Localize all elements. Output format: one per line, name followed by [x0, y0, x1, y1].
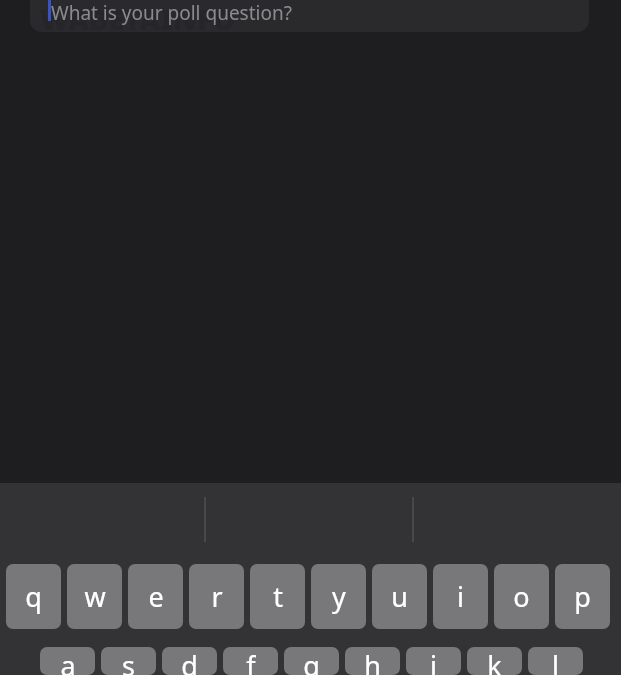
- staticText: q: [25, 578, 42, 615]
- button[interactable]: WABETAINFO: [30, 0, 589, 32]
- button[interactable]: o: [494, 564, 549, 629]
- staticText: f: [246, 647, 256, 675]
- staticText: u: [391, 578, 408, 615]
- button[interactable]: p: [555, 564, 610, 629]
- staticText: j: [430, 647, 437, 675]
- button[interactable]: a: [40, 647, 95, 675]
- button[interactable]: j: [406, 647, 461, 675]
- staticText: p: [574, 578, 591, 615]
- staticText: w: [84, 578, 106, 615]
- staticText: a: [60, 647, 76, 675]
- button[interactable]: q: [6, 564, 61, 629]
- button[interactable]: r: [189, 564, 244, 629]
- staticText: i: [457, 578, 464, 615]
- button[interactable]: k: [467, 647, 522, 675]
- button[interactable]: g: [284, 647, 339, 675]
- button[interactable]: l: [528, 647, 583, 675]
- button[interactable]: u: [372, 564, 427, 629]
- staticText: WABETAINFO: [40, 0, 236, 32]
- button[interactable]: w: [67, 564, 122, 629]
- button[interactable]: e: [128, 564, 183, 629]
- staticText: What is your poll question?: [51, 0, 292, 26]
- staticText: d: [181, 647, 198, 675]
- staticText: e: [148, 578, 164, 615]
- staticText: l: [552, 647, 559, 675]
- staticText: g: [303, 647, 320, 675]
- staticText: s: [122, 647, 135, 675]
- button[interactable]: h: [345, 647, 400, 675]
- staticText: h: [364, 647, 381, 675]
- staticText: o: [513, 578, 530, 615]
- button[interactable]: f: [223, 647, 278, 675]
- button[interactable]: s: [101, 647, 156, 675]
- button[interactable]: t: [250, 564, 305, 629]
- staticText: y: [332, 578, 346, 615]
- staticText: t: [273, 578, 283, 615]
- staticText: k: [487, 647, 502, 675]
- button[interactable]: i: [433, 564, 488, 629]
- button[interactable]: y: [311, 564, 366, 629]
- button[interactable]: d: [162, 647, 217, 675]
- staticText: r: [211, 578, 223, 615]
